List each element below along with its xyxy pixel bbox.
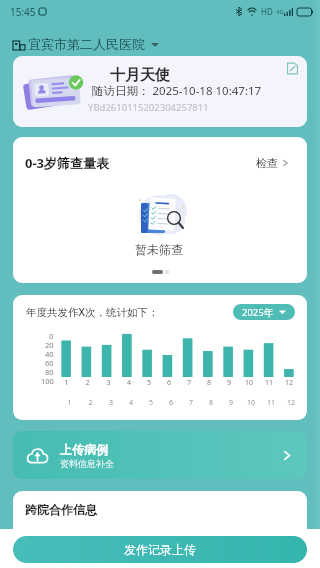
staticText: YBd2610115202304257811 [88, 101, 209, 114]
staticText: 8 [201, 398, 221, 408]
staticText: 15:45 [10, 5, 36, 19]
staticText: 11 [261, 398, 281, 408]
staticText: 8 [199, 378, 219, 388]
staticText: 上传病例 [60, 442, 108, 457]
staticText: 80 [45, 367, 54, 377]
staticText: 发作记录上传 [124, 542, 196, 557]
button[interactable]: 2025年 [233, 304, 295, 320]
staticText: 4 [119, 378, 139, 388]
staticText: 9 [219, 378, 239, 388]
staticText: 40 [45, 349, 54, 359]
staticText: 9 [221, 398, 241, 408]
staticText: HD [261, 6, 273, 17]
staticText: 7 [179, 378, 199, 388]
staticText: 检查 [256, 156, 278, 170]
staticText: 20 [45, 340, 54, 350]
button[interactable]: 检查 [256, 156, 288, 170]
staticText: 4 [121, 398, 141, 408]
staticText: 11 [259, 378, 279, 388]
staticText: 5 [139, 378, 159, 388]
staticText: 12 [279, 378, 299, 388]
staticText: 6 [159, 378, 179, 388]
staticText: 十月天使 [110, 66, 170, 85]
staticText: 2 [80, 398, 101, 408]
staticText: 5 [141, 398, 161, 408]
button[interactable]: 十月天使 [13, 56, 307, 127]
staticText: 3 [98, 378, 119, 388]
staticText: 7 [181, 398, 201, 408]
staticText: 年度共发作X次，统计如下： [26, 305, 159, 319]
staticText: 60 [45, 358, 54, 368]
staticText: 2 [77, 378, 98, 388]
staticText: 宜宾市第二人民医院 [28, 36, 145, 52]
staticText: 10 [239, 378, 259, 388]
staticText: 1 [56, 378, 77, 388]
staticText: 10 [241, 398, 261, 408]
staticText: 0 [49, 331, 54, 341]
staticText: 4G [276, 8, 284, 16]
staticText: 3 [101, 398, 121, 408]
staticText: 暂未筛查 [135, 242, 183, 257]
staticText: 2025年 [242, 306, 274, 319]
staticText: 0-3岁筛查量表 [25, 154, 110, 172]
staticText: 6 [161, 398, 181, 408]
staticText: 随访日期： 2025-10-18 10:47:17 [92, 83, 262, 99]
staticText: 12 [281, 398, 301, 408]
button[interactable]: 跨院合作信息 [13, 491, 307, 551]
staticText: 跨院合作信息 [25, 502, 97, 517]
staticText: 1 [59, 398, 80, 408]
button[interactable]: 发作记录上传 [13, 536, 307, 563]
button[interactable]: 编辑病例 [286, 62, 299, 75]
staticText: 资料信息补全 [60, 458, 114, 469]
staticText: 100 [41, 376, 54, 386]
button[interactable]: 上传病例 [13, 431, 307, 479]
